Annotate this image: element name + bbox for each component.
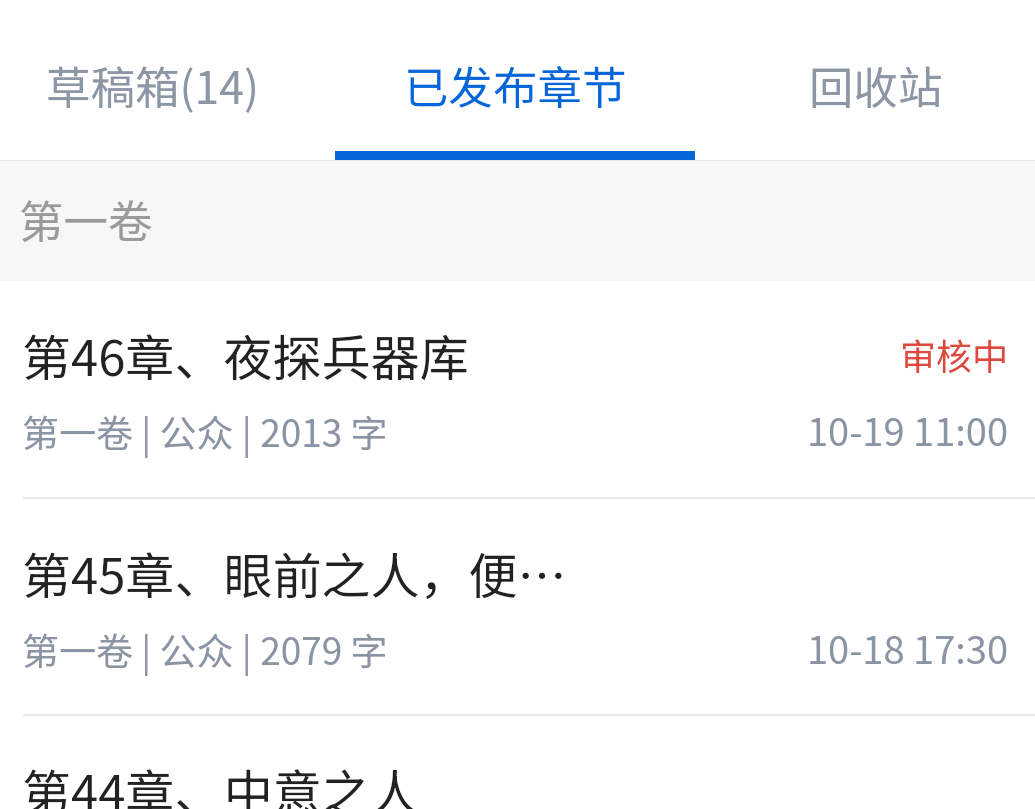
staticText: 第46章、夜探兵器库	[22, 319, 882, 390]
button[interactable]: 第45章、眼前之人，便…	[0, 499, 1035, 714]
staticText: 10-18 17:30	[807, 620, 1008, 675]
staticText: 第一卷	[19, 186, 153, 250]
button[interactable]: 草稿箱(14)	[0, 0, 334, 151]
staticText: 草稿箱(14)	[46, 52, 259, 116]
staticText: 第44章、中意之人	[22, 754, 882, 809]
staticText: 回收站	[809, 52, 943, 116]
staticText: 10-19 11:00	[807, 402, 1008, 457]
button[interactable]: 第46章、夜探兵器库	[0, 281, 1035, 497]
button[interactable]: 第一卷	[0, 160, 1035, 281]
staticText: 第45章、眼前之人，便…	[22, 537, 882, 608]
staticText: 第一卷 | 公众 | 2079 字	[22, 622, 388, 676]
staticText: 审核中	[900, 328, 1009, 380]
button[interactable]: 已发布章节	[335, 0, 695, 151]
button[interactable]: 第44章、中意之人	[0, 716, 1035, 809]
button[interactable]: 回收站	[695, 0, 1035, 151]
staticText: 第一卷 | 公众 | 2013 字	[22, 404, 388, 458]
staticText: 已发布章节	[404, 52, 627, 116]
